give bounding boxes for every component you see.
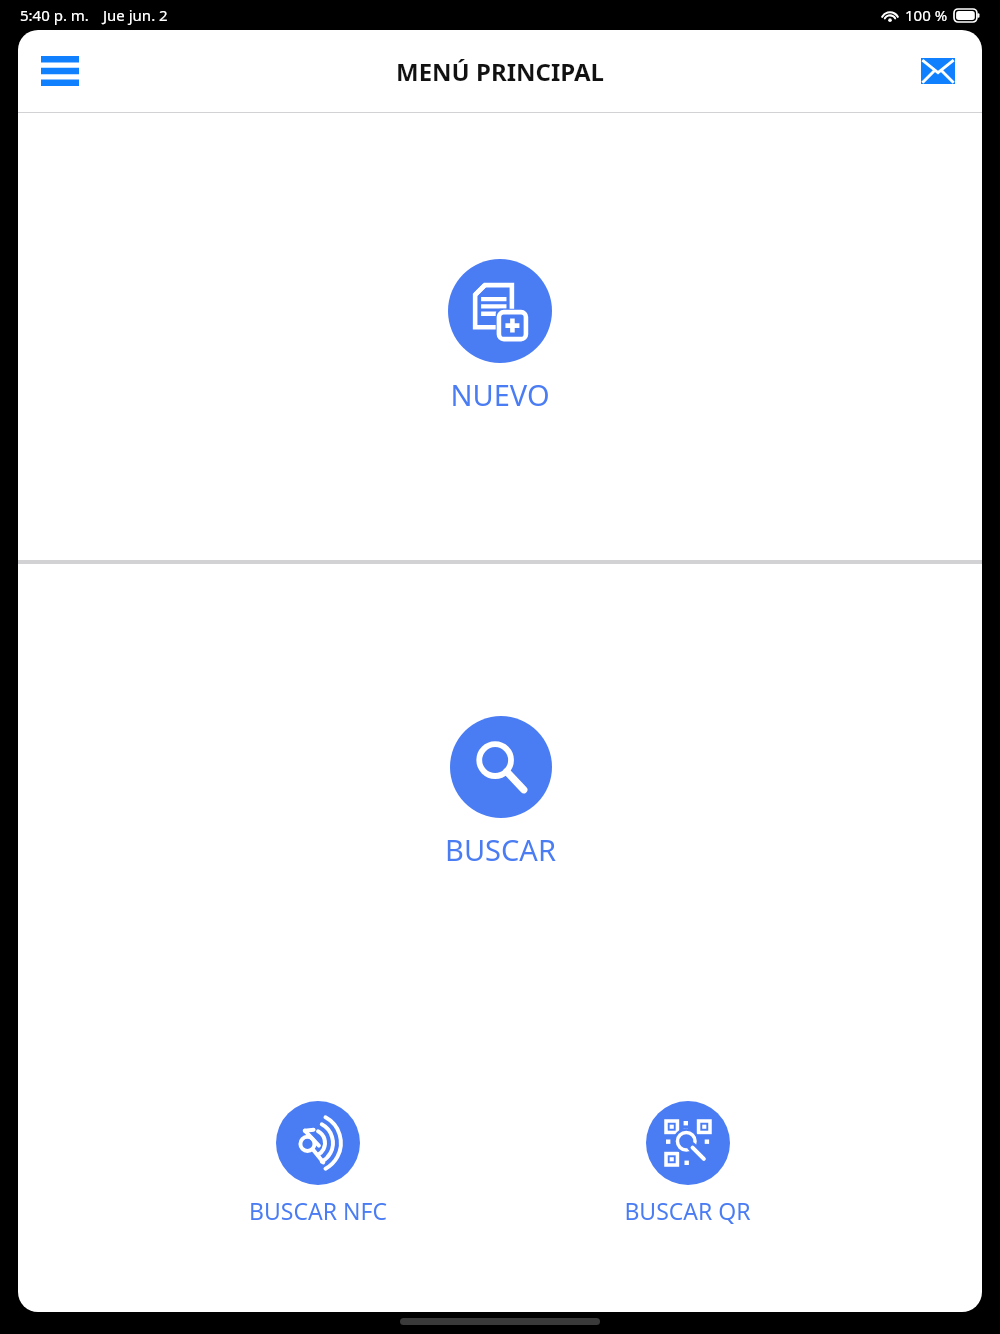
staticText: 5:40 p. m.: [20, 5, 89, 25]
staticText: BUSCAR NFC: [249, 1195, 387, 1226]
staticText: 100 %: [905, 5, 948, 25]
button[interactable]: BUSCAR: [439, 714, 562, 871]
staticText: BUSCAR: [445, 830, 556, 869]
staticText: MENÚ PRINCIPAL: [396, 55, 604, 88]
button[interactable]: BUSCAR QR: [618, 1099, 757, 1228]
button[interactable]: Messages: [908, 41, 968, 101]
staticText: Jue jun. 2: [103, 5, 168, 25]
button[interactable]: BUSCAR NFC: [243, 1099, 393, 1228]
button[interactable]: Menu: [28, 41, 92, 101]
button[interactable]: NUEVO: [442, 257, 558, 416]
staticText: BUSCAR QR: [624, 1195, 751, 1226]
staticText: NUEVO: [450, 375, 550, 414]
